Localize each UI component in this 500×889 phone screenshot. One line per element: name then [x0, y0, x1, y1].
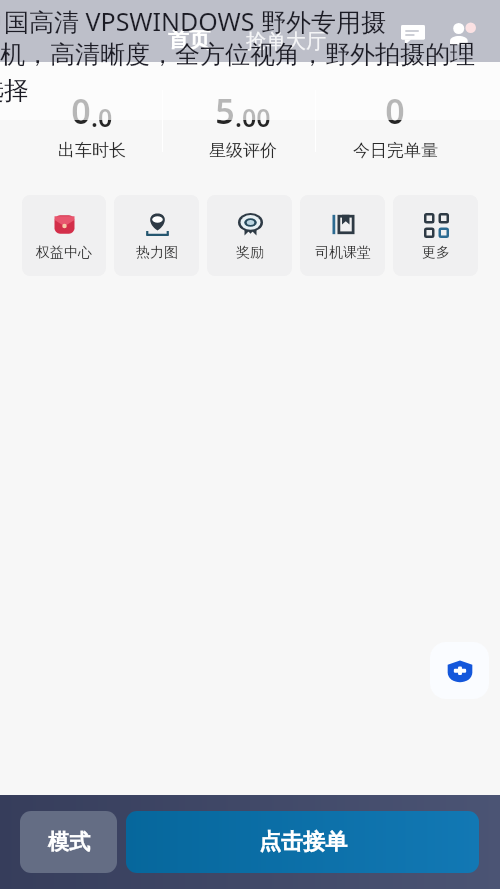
- staticText: 星级评价: [209, 140, 277, 161]
- button[interactable]: Profile: [439, 11, 485, 57]
- button[interactable]: 更多: [393, 195, 478, 276]
- staticText: 点击接单: [259, 828, 347, 856]
- staticText: 今日完单量: [353, 140, 438, 161]
- staticText: 0: [385, 88, 405, 134]
- button[interactable]: 权益中心: [22, 195, 106, 276]
- button[interactable]: 0: [16, 88, 167, 161]
- staticText: 权益中心: [36, 244, 92, 262]
- staticText: 出车时长: [58, 140, 126, 161]
- staticText: .0: [91, 100, 113, 134]
- staticText: 热力图: [136, 244, 178, 262]
- staticText: 司机课堂: [315, 244, 371, 262]
- staticText: 5: [215, 88, 235, 134]
- button[interactable]: 0: [319, 88, 471, 161]
- button[interactable]: 司机课堂: [300, 195, 385, 276]
- button[interactable]: Safety: [430, 642, 489, 699]
- staticText: 模式: [48, 829, 90, 855]
- staticText: .00: [235, 100, 271, 134]
- button[interactable]: 5: [167, 88, 319, 161]
- staticText: 0: [71, 88, 91, 134]
- button[interactable]: 点击接单: [126, 811, 479, 873]
- button[interactable]: 抢单大厅: [240, 26, 332, 57]
- button[interactable]: 奖励: [207, 195, 292, 276]
- button[interactable]: Messages: [390, 12, 436, 58]
- button[interactable]: 首页: [162, 24, 216, 56]
- staticText: 奖励: [236, 244, 264, 262]
- staticText: 首页: [168, 27, 210, 53]
- staticText: 抢单大厅: [246, 29, 326, 54]
- button[interactable]: 模式: [20, 811, 117, 873]
- staticText: 中国高清 VPSWINDOWS 野外专用摄: [0, 4, 479, 38]
- staticText: 像机，高清晰度，全方位视角，野外拍摄的理想: [0, 39, 475, 101]
- staticText: 选择: [0, 75, 479, 106]
- staticText: 更多: [422, 244, 450, 262]
- button[interactable]: 热力图: [114, 195, 199, 276]
